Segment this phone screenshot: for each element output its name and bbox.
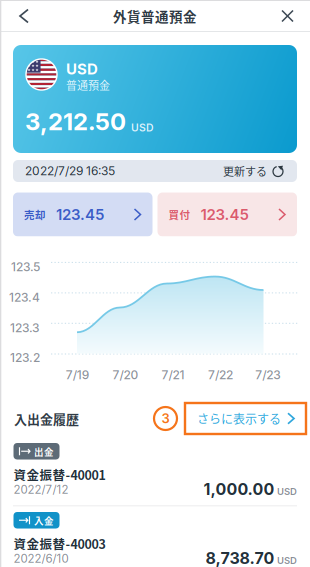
button[interactable]: 買付	[157, 192, 297, 236]
button[interactable]: さらに表示する	[185, 403, 306, 434]
staticText: 2022/7/12	[13, 482, 68, 496]
staticText: 3	[161, 411, 169, 426]
staticText: 売却	[24, 207, 46, 222]
staticText: 2022/6/10	[13, 551, 68, 565]
staticText: USD	[277, 486, 297, 497]
staticText: ★★★	[27, 68, 39, 72]
staticText: 入金	[34, 513, 54, 527]
staticText: 123.45	[56, 205, 104, 223]
staticText: 7/19	[66, 367, 90, 382]
staticText: 更新する	[223, 163, 267, 179]
staticText: 123.4	[9, 290, 40, 305]
button[interactable]: Back	[0, 0, 42, 31]
button[interactable]: 売却	[13, 192, 152, 236]
staticText: 1,000.00	[203, 479, 274, 499]
staticText: 7/21	[161, 367, 184, 382]
staticText: 123.5	[11, 260, 40, 274]
staticText: 2022/7/29 16:35	[25, 164, 115, 178]
staticText: ★★★	[27, 60, 39, 64]
staticText: USD	[277, 555, 297, 566]
staticText: 普通預金	[66, 77, 110, 93]
staticText: さらに表示する	[197, 410, 281, 427]
staticText: 7/22	[208, 367, 233, 382]
staticText: 123.3	[10, 321, 40, 335]
staticText: ★★★	[27, 64, 39, 68]
staticText: 資金振替-40001	[13, 465, 105, 484]
staticText: 7/23	[255, 367, 281, 382]
staticText: USD	[131, 121, 154, 134]
staticText: 123.45	[200, 205, 248, 223]
staticText: 7/20	[112, 367, 138, 382]
staticText: 入出金履歴	[14, 409, 79, 428]
staticText: 外貨普通預金	[113, 6, 197, 26]
button[interactable]: Close	[268, 0, 310, 31]
staticText: 123.2	[10, 350, 40, 365]
staticText: 8,738.70	[205, 548, 274, 567]
staticText: 買付	[168, 207, 190, 222]
staticText: USD	[66, 60, 98, 78]
staticText: 資金振替-40003	[13, 534, 105, 553]
staticText: 3,212.50	[25, 107, 126, 136]
staticText: 出金	[34, 444, 54, 458]
